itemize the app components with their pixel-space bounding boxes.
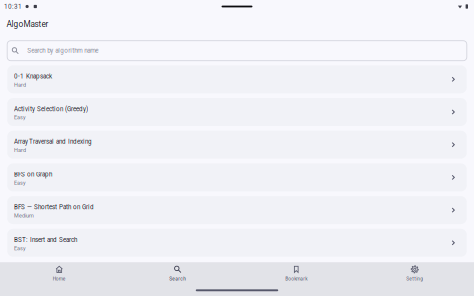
button[interactable]: 0-1 Knapsack [7, 65, 467, 93]
staticText: Hard [14, 147, 26, 153]
button[interactable]: BFS — Shortest Path on Grid [7, 196, 467, 224]
staticText: Hard [14, 82, 26, 88]
staticText: Home [53, 276, 66, 281]
staticText: Activity Selection (Greedy) [14, 105, 88, 113]
staticText: Bookmark [285, 276, 307, 281]
staticText: Setting [406, 276, 423, 281]
button[interactable]: Search [118, 261, 237, 281]
button[interactable]: Bookmark [237, 261, 355, 281]
button[interactable]: Home [0, 261, 118, 281]
button[interactable]: Activity Selection (Greedy) [7, 98, 467, 126]
staticText: 0-1 Knapsack [14, 73, 52, 80]
button[interactable]: BST: Insert and Search [7, 229, 467, 257]
staticText: BFS on Graph [14, 171, 52, 178]
staticText: 10:31 [4, 3, 22, 10]
button[interactable]: BFS on Graph [7, 163, 467, 191]
staticText: BFS — Shortest Path on Grid [14, 203, 94, 211]
button[interactable]: Array Traversal and Indexing [7, 131, 467, 159]
staticText: AlgoMaster [7, 19, 49, 29]
staticText: Medium [14, 212, 34, 219]
staticText: Easy [14, 180, 26, 186]
staticText: Array Traversal and Indexing [14, 138, 92, 145]
staticText: BST: Insert and Search [14, 236, 77, 243]
staticText: Search [169, 276, 186, 281]
staticText: Easy [14, 245, 26, 251]
button[interactable]: Setting [355, 261, 474, 281]
staticText: Search by algorithm name [27, 47, 98, 54]
staticText: Easy [14, 114, 26, 121]
